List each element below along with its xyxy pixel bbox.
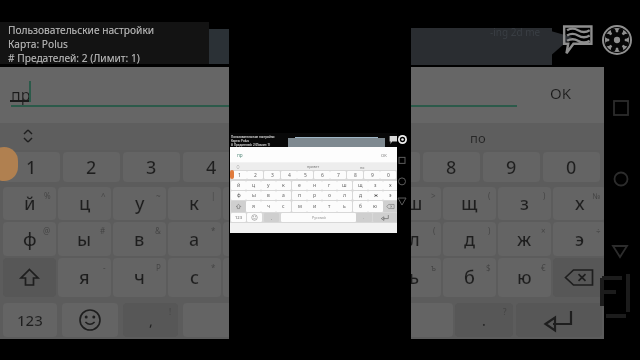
button[interactable] bbox=[383, 201, 398, 212]
button[interactable] bbox=[183, 303, 453, 337]
button[interactable]: щ bbox=[443, 187, 496, 220]
button[interactable]: ш bbox=[337, 181, 352, 190]
button[interactable]: е bbox=[292, 181, 307, 190]
button[interactable]: а bbox=[168, 222, 221, 256]
button[interactable]: 2 bbox=[63, 152, 120, 182]
button[interactable]: р bbox=[278, 222, 331, 256]
button[interactable]: OK bbox=[531, 76, 591, 110]
button[interactable] bbox=[3, 258, 56, 297]
button[interactable]: привет bbox=[0, 123, 604, 149]
button[interactable] bbox=[231, 201, 246, 212]
button[interactable]: 5 bbox=[243, 152, 300, 182]
button[interactable]: з bbox=[368, 181, 383, 190]
button[interactable]: ь bbox=[337, 201, 352, 212]
button[interactable]: э bbox=[383, 191, 398, 200]
button[interactable] bbox=[516, 303, 602, 337]
button[interactable]: к bbox=[168, 187, 221, 220]
button[interactable]: л bbox=[388, 222, 441, 256]
button[interactable]: Recents bbox=[612, 99, 630, 117]
button[interactable]: 7 bbox=[363, 152, 420, 182]
button[interactable]: ю bbox=[368, 201, 383, 212]
button[interactable]: ф bbox=[231, 191, 246, 200]
button[interactable]: г bbox=[322, 181, 337, 190]
button[interactable]: э bbox=[553, 222, 606, 256]
button[interactable]: н bbox=[307, 181, 322, 190]
button[interactable]: б bbox=[353, 201, 368, 212]
button[interactable]: а bbox=[276, 191, 291, 200]
button[interactable]: 0 bbox=[543, 152, 600, 182]
button[interactable]: 123 bbox=[231, 213, 246, 222]
button[interactable]: 4 bbox=[183, 152, 240, 182]
button[interactable]: 9 bbox=[364, 171, 380, 179]
button[interactable]: Chat bbox=[563, 25, 592, 49]
button[interactable]: 1 bbox=[231, 171, 247, 179]
button[interactable]: з bbox=[498, 187, 551, 220]
button[interactable]: привет bbox=[230, 163, 397, 170]
button[interactable]: й bbox=[231, 181, 246, 190]
button[interactable]: л bbox=[337, 191, 352, 200]
button[interactable] bbox=[247, 213, 262, 222]
button[interactable]: г bbox=[333, 187, 386, 220]
button[interactable]: к bbox=[276, 181, 291, 190]
button[interactable]: ы bbox=[58, 222, 111, 256]
button[interactable]: 4 bbox=[281, 171, 297, 179]
button[interactable]: ю bbox=[498, 258, 551, 297]
button[interactable]: у bbox=[261, 181, 276, 190]
button[interactable]: 5 bbox=[297, 171, 313, 179]
button[interactable]: п bbox=[223, 222, 276, 256]
button[interactable]: я bbox=[58, 258, 111, 297]
button[interactable]: щ bbox=[353, 181, 368, 190]
button[interactable]: м bbox=[223, 258, 276, 297]
button[interactable]: ш bbox=[388, 187, 441, 220]
button[interactable]: д bbox=[443, 222, 496, 256]
button[interactable]: 9 bbox=[483, 152, 540, 182]
button[interactable] bbox=[553, 258, 606, 297]
button[interactable]: 8 bbox=[347, 171, 363, 179]
button[interactable]: р bbox=[307, 191, 322, 200]
button[interactable]: 6 bbox=[314, 171, 330, 179]
button[interactable]: ч bbox=[261, 201, 276, 212]
button[interactable]: м bbox=[292, 201, 307, 212]
button[interactable]: д bbox=[353, 191, 368, 200]
button[interactable]: о bbox=[333, 222, 386, 256]
button[interactable]: х bbox=[553, 187, 606, 220]
button[interactable]: ч bbox=[113, 258, 166, 297]
button[interactable]: ц bbox=[246, 181, 261, 190]
button[interactable]: ь bbox=[388, 258, 441, 297]
button[interactable]: й bbox=[3, 187, 56, 220]
button[interactable]: 3 bbox=[264, 171, 280, 179]
button[interactable]: Home bbox=[612, 170, 630, 188]
button[interactable]: е bbox=[223, 187, 276, 220]
button[interactable] bbox=[62, 303, 118, 337]
button[interactable]: б bbox=[443, 258, 496, 297]
button[interactable]: у bbox=[113, 187, 166, 220]
button[interactable]: 0 bbox=[380, 171, 396, 179]
button[interactable]: ф bbox=[3, 222, 56, 256]
button[interactable]: 7 bbox=[330, 171, 346, 179]
button[interactable]: 1 bbox=[3, 152, 60, 182]
button[interactable]: в bbox=[261, 191, 276, 200]
button[interactable]: ы bbox=[246, 191, 261, 200]
button[interactable]: т bbox=[322, 201, 337, 212]
button[interactable]: 6 bbox=[303, 152, 360, 182]
button[interactable]: Settings bbox=[602, 25, 632, 55]
button[interactable]: 3 bbox=[123, 152, 180, 182]
button[interactable]: 8 bbox=[423, 152, 480, 182]
button[interactable]: 123 bbox=[3, 303, 57, 337]
button[interactable]: ж bbox=[498, 222, 551, 256]
button[interactable]: н bbox=[278, 187, 331, 220]
button[interactable]: Back bbox=[611, 242, 629, 260]
button[interactable]: ц bbox=[58, 187, 111, 220]
button[interactable]: п bbox=[292, 191, 307, 200]
button[interactable]: о bbox=[322, 191, 337, 200]
button[interactable]: х bbox=[383, 181, 398, 190]
button[interactable]: 2 bbox=[247, 171, 263, 179]
button[interactable]: с bbox=[168, 258, 221, 297]
button[interactable]: и bbox=[307, 201, 322, 212]
